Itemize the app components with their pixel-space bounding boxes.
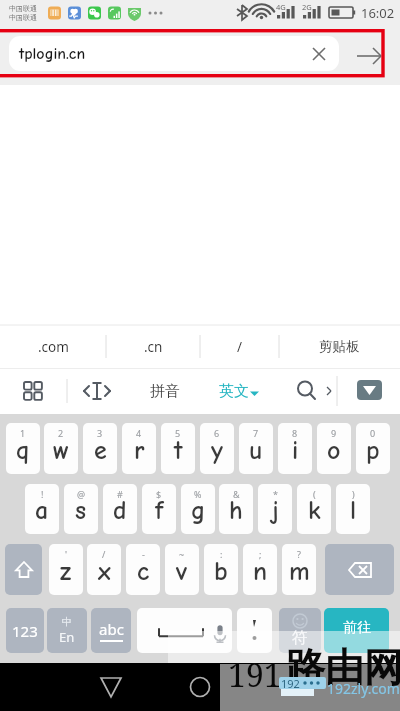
staticText: ) xyxy=(352,488,355,500)
button[interactable]: Keyboard layouts xyxy=(10,368,56,414)
button[interactable]: .cn xyxy=(106,325,200,368)
staticText: 7 xyxy=(253,427,259,439)
staticText: 2 xyxy=(58,427,64,439)
staticText: 符 xyxy=(292,628,308,648)
button[interactable]: 7 xyxy=(239,423,273,474)
staticText: 中国联通 xyxy=(9,4,37,13)
button[interactable]: Hide keyboard xyxy=(357,380,382,400)
button[interactable]: : xyxy=(204,544,238,595)
button[interactable]: Back xyxy=(91,667,131,707)
staticText: n xyxy=(253,557,268,587)
staticText: ! xyxy=(41,488,44,500)
staticText: z xyxy=(60,557,72,587)
staticText: f xyxy=(155,496,164,526)
staticText: c xyxy=(137,557,150,587)
staticText: / xyxy=(237,338,243,356)
staticText: 6 xyxy=(214,427,220,439)
staticText: k xyxy=(308,496,321,526)
button[interactable]: - xyxy=(126,544,160,595)
button[interactable]: @ xyxy=(64,484,98,534)
button[interactable]: 123 xyxy=(6,608,44,653)
staticText: ( xyxy=(313,488,316,500)
staticText: 16:02 xyxy=(361,4,395,22)
button[interactable]: / xyxy=(200,325,279,368)
button[interactable]: 5 xyxy=(161,423,195,474)
button[interactable]: Home xyxy=(180,667,220,707)
button[interactable]: / xyxy=(87,544,121,595)
button[interactable]: ( xyxy=(297,484,331,534)
staticText: 前往 xyxy=(343,619,371,637)
staticText: 剪贴板 xyxy=(319,338,360,355)
button[interactable]: ? xyxy=(282,544,316,595)
button[interactable]: 8 xyxy=(278,423,312,474)
button[interactable]: % xyxy=(181,484,215,534)
staticText: b xyxy=(214,557,228,587)
button[interactable]: ; xyxy=(243,544,277,595)
staticText: 路由网 xyxy=(286,643,400,692)
staticText: 8 xyxy=(292,427,298,439)
staticText: 9 xyxy=(331,427,337,439)
staticText: 123 xyxy=(12,621,38,641)
staticText: .com xyxy=(38,338,69,356)
staticText: $ xyxy=(156,488,162,500)
button[interactable]: Symbols xyxy=(279,608,321,653)
button[interactable]: ~ xyxy=(165,544,199,595)
staticText: 中国联通 xyxy=(9,13,37,22)
button[interactable]: Shift xyxy=(5,544,42,595)
button[interactable]: 3 xyxy=(83,423,117,474)
button[interactable]: 6 xyxy=(200,423,234,474)
staticText: 0 xyxy=(370,427,376,439)
button[interactable]: * xyxy=(258,484,292,534)
staticText: 2G xyxy=(302,2,312,12)
staticText: 4G xyxy=(276,2,286,12)
button[interactable]: & xyxy=(219,484,253,534)
staticText: h xyxy=(229,496,243,526)
staticText: : xyxy=(220,548,223,560)
staticText: .cn xyxy=(144,338,163,356)
button[interactable]: Space xyxy=(137,608,232,653)
staticText: y xyxy=(211,436,223,466)
button[interactable]: 1 xyxy=(6,423,40,474)
staticText: v xyxy=(176,557,188,587)
staticText: 191 xyxy=(228,653,282,697)
staticText: u xyxy=(249,436,263,466)
button[interactable]: .com xyxy=(0,325,106,368)
button[interactable]: Search xyxy=(290,368,324,414)
staticText: - xyxy=(142,548,145,560)
button[interactable]: $ xyxy=(142,484,176,534)
staticText: 1 xyxy=(20,427,26,439)
staticText: 4 xyxy=(136,427,142,439)
staticText: & xyxy=(233,488,240,500)
button[interactable]: Backspace xyxy=(325,544,394,595)
button[interactable]: 2 xyxy=(44,423,78,474)
button[interactable]: ) xyxy=(336,484,370,534)
button[interactable]: tplogin.cn xyxy=(9,36,339,71)
button[interactable]: ! xyxy=(25,484,59,534)
button[interactable]: ' xyxy=(49,544,83,595)
button[interactable]: Go xyxy=(352,39,386,73)
button[interactable]: 9 xyxy=(317,423,351,474)
button[interactable]: # xyxy=(103,484,137,534)
staticText: p xyxy=(366,436,380,466)
staticText: En xyxy=(59,628,75,646)
staticText: # xyxy=(117,488,123,500)
button[interactable]: 0 xyxy=(356,423,390,474)
staticText: t xyxy=(174,436,183,466)
staticText: tplogin.cn xyxy=(19,45,86,63)
button[interactable]: Clear xyxy=(307,42,331,66)
staticText: w xyxy=(53,436,70,466)
button[interactable]: 拼音 xyxy=(133,368,197,414)
button[interactable]: 4 xyxy=(122,423,156,474)
button[interactable] xyxy=(237,608,272,653)
staticText: 中 xyxy=(62,615,72,628)
staticText: * xyxy=(273,488,278,500)
button[interactable]: Edit text cursor xyxy=(75,368,119,414)
button[interactable]: 英文 xyxy=(205,368,273,414)
staticText: a xyxy=(35,496,49,526)
button[interactable]: 剪贴板 xyxy=(279,325,400,368)
staticText: ; xyxy=(259,548,262,560)
button[interactable]: 前往 xyxy=(324,608,389,653)
button[interactable]: Switch input language xyxy=(47,608,87,653)
staticText: 英文 xyxy=(219,382,249,401)
button[interactable]: abc xyxy=(91,608,131,653)
